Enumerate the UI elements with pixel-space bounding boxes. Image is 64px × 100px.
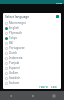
staticText: Dutch <box>9 51 18 55</box>
button[interactable]: Indonesia <box>3 55 61 60</box>
button[interactable]: Plymouth <box>3 30 61 35</box>
staticText: Espanol <box>9 66 20 70</box>
staticText: CANCEL <box>39 86 49 88</box>
staticText: Plymouth <box>9 31 23 35</box>
staticText: Punjabi <box>9 61 20 65</box>
button[interactable]: Italiano <box>3 80 61 85</box>
staticText: Montenegro <box>9 21 26 25</box>
button[interactable]: CANCEL <box>38 85 50 89</box>
staticText: Tokyo <box>9 36 17 40</box>
staticText: English <box>9 26 19 30</box>
staticText: Swedish <box>9 76 21 80</box>
button[interactable]: Add language <box>56 15 59 18</box>
button[interactable]: Home <box>22 91 43 100</box>
button[interactable]: SAVE <box>50 85 59 89</box>
button[interactable]: Portuguese <box>3 45 61 50</box>
button[interactable]: Bill <box>3 40 61 45</box>
staticText: Bill <box>9 41 14 45</box>
staticText: Gallien <box>9 71 19 75</box>
staticText: Portuguese <box>9 46 25 50</box>
button[interactable]: Recents <box>43 91 64 100</box>
button[interactable]: Gallien <box>3 70 61 75</box>
button[interactable]: Montenegro <box>3 20 61 25</box>
button[interactable]: Espanol <box>3 65 61 70</box>
staticText: Indonesia <box>9 56 23 60</box>
staticText: 12:45 <box>56 1 63 4</box>
staticText: SAVE <box>51 86 58 88</box>
button[interactable]: English <box>3 25 61 30</box>
staticText: Select language <box>5 15 30 19</box>
staticText: Italiano <box>9 81 20 85</box>
button[interactable]: Swedish <box>3 75 61 80</box>
button[interactable]: Back <box>0 91 22 100</box>
button[interactable]: Punjabi <box>3 60 61 65</box>
button[interactable]: Dutch <box>3 50 61 55</box>
button[interactable]: Tokyo <box>3 35 61 40</box>
